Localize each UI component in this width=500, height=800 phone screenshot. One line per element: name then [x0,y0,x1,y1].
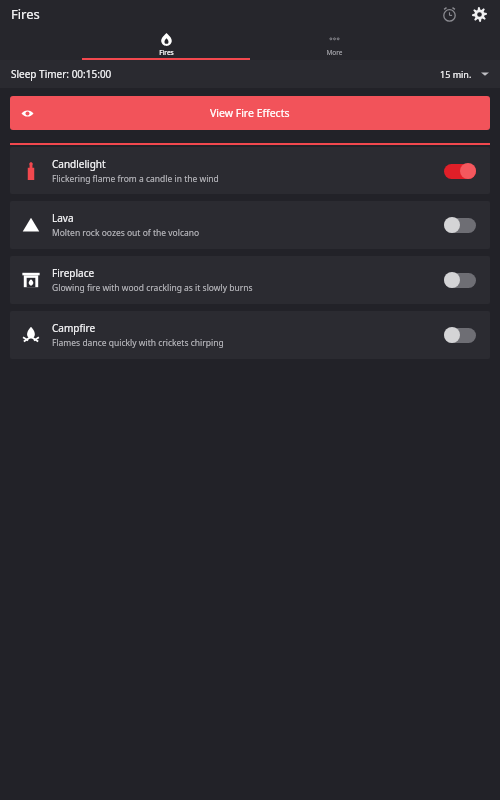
staticText: Candlelight [52,157,106,171]
button[interactable]: Fires [82,28,250,60]
button[interactable]: Settings [466,1,492,27]
staticText: Lava [52,211,74,225]
button[interactable]: View Fire Effects [10,96,490,130]
button[interactable]: Candlelight [10,147,490,194]
button[interactable]: Lava [10,201,490,249]
staticText: Flames dance quickly with crickets chirp… [52,337,224,349]
button[interactable]: Sleep Timer: 00:15:00 [0,60,500,88]
button[interactable]: Fireplace [10,256,490,304]
staticText: Campfire [52,321,96,335]
staticText: Glowing fire with wood crackling as it s… [52,282,253,294]
button[interactable]: Turn on Campfire [444,327,476,343]
button[interactable]: Turn off Candlelight [444,163,476,179]
staticText: Fires [159,48,174,57]
staticText: Sleep Timer: 00:15:00 [11,67,112,81]
staticText: Molten rock oozes out of the volcano [52,227,200,239]
staticText: View Fire Effects [210,106,290,120]
staticText: 15 min. [440,68,472,80]
button[interactable]: More [250,28,418,60]
staticText: Flickering flame from a candle in the wi… [52,173,219,185]
button[interactable]: Turn on Fireplace [444,272,476,288]
staticText: Fires [11,5,40,23]
button[interactable]: Turn on Lava [444,217,476,233]
staticText: Fireplace [52,266,95,280]
other: Change timer duration [480,69,490,79]
staticText: More [326,48,343,57]
button[interactable]: Sleep timer [436,1,462,27]
button[interactable]: Campfire [10,311,490,359]
